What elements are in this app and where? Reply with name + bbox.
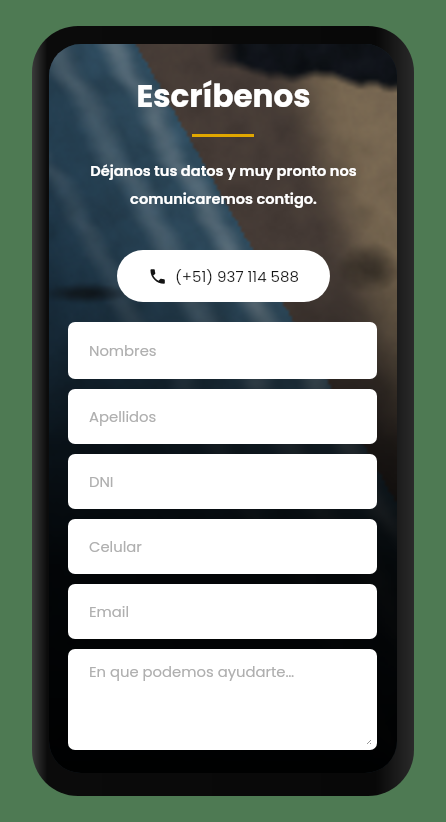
button[interactable]: Apellidos <box>68 389 377 444</box>
button[interactable]: En que podemos ayudarte… <box>68 649 377 750</box>
staticText: (+51) 937 114 588 <box>175 266 299 287</box>
other: Call <box>148 267 167 286</box>
button[interactable]: Nombres <box>68 322 377 379</box>
button[interactable]: Email <box>68 584 377 639</box>
staticText: Email <box>89 601 130 622</box>
staticText: Déjanos tus datos y muy pronto nos comun… <box>90 161 357 209</box>
staticText: En que podemos ayudarte… <box>89 661 295 682</box>
staticText: Nombres <box>89 340 157 361</box>
button[interactable]: Celular <box>68 519 377 574</box>
staticText: Apellidos <box>89 406 157 427</box>
staticText: DNI <box>89 471 114 492</box>
button[interactable]: DNI <box>68 454 377 509</box>
staticText: Celular <box>89 536 142 557</box>
staticText: Escríbenos <box>136 74 311 117</box>
button[interactable]: Call <box>117 250 330 302</box>
